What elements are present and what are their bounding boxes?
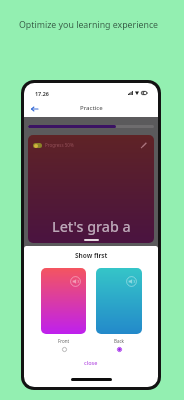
button[interactable]: Play audio bbox=[126, 276, 137, 287]
button[interactable]: Play audio bbox=[70, 276, 81, 287]
staticText: Progress 50% bbox=[45, 142, 74, 148]
button[interactable]: close bbox=[78, 357, 104, 368]
button[interactable]: Front option bbox=[60, 345, 68, 353]
staticText: Let's grab a bbox=[52, 217, 131, 236]
staticText: Practice bbox=[80, 104, 103, 112]
button[interactable]: Progress toggle bbox=[33, 143, 42, 148]
button[interactable]: Back option bbox=[115, 345, 123, 353]
staticText: Back bbox=[114, 338, 125, 344]
button[interactable]: Back bbox=[27, 102, 41, 116]
staticText: Optimize you learning experience bbox=[19, 19, 159, 31]
staticText: close bbox=[84, 359, 98, 366]
staticText: 17.26 bbox=[35, 90, 49, 97]
staticText: Show first bbox=[75, 251, 108, 260]
button[interactable]: Edit bbox=[139, 140, 149, 150]
button[interactable]: Front card bbox=[41, 268, 86, 334]
button[interactable]: Back card bbox=[96, 268, 142, 334]
staticText: Front bbox=[58, 338, 70, 344]
